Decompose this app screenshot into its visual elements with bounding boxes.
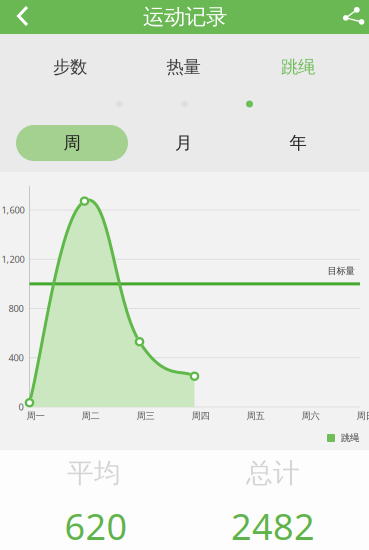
staticText: 运动记录 — [143, 4, 227, 30]
staticText: 800 — [8, 302, 23, 315]
staticText: 周 — [63, 132, 80, 154]
staticText: 步数 — [53, 56, 87, 78]
staticText: 周一 — [26, 410, 44, 422]
button[interactable]: 月 — [127, 124, 239, 162]
staticText: 总计 — [246, 457, 300, 489]
staticText: 0 — [18, 401, 23, 413]
staticText: 周四 — [191, 410, 209, 422]
button[interactable]: Share — [336, 2, 368, 32]
staticText: 1,200 — [1, 253, 24, 265]
button[interactable]: Back — [0, 0, 44, 34]
staticText: 周二 — [81, 410, 99, 422]
staticText: 周三 — [136, 410, 154, 422]
staticText: 2482 — [231, 502, 315, 550]
staticText: 月 — [175, 132, 192, 154]
staticText: 跳绳 — [341, 432, 359, 444]
staticText: 平均 — [67, 457, 121, 489]
staticText: 年 — [289, 132, 306, 154]
staticText: 1,600 — [1, 204, 24, 216]
staticText: 周五 — [246, 410, 264, 422]
button[interactable]: 年 — [242, 124, 354, 162]
button[interactable]: 跳绳 — [243, 46, 353, 88]
staticText: 620 — [64, 502, 127, 550]
staticText: 周日 — [356, 410, 369, 422]
staticText: 目标量 — [327, 265, 354, 277]
button[interactable]: 周 — [16, 124, 128, 162]
staticText: 400 — [8, 352, 23, 364]
staticText: 跳绳 — [281, 56, 315, 78]
staticText: 周六 — [301, 410, 319, 422]
button[interactable]: 步数 — [15, 46, 125, 88]
button[interactable]: 热量 — [128, 46, 238, 88]
staticText: 热量 — [166, 56, 200, 78]
